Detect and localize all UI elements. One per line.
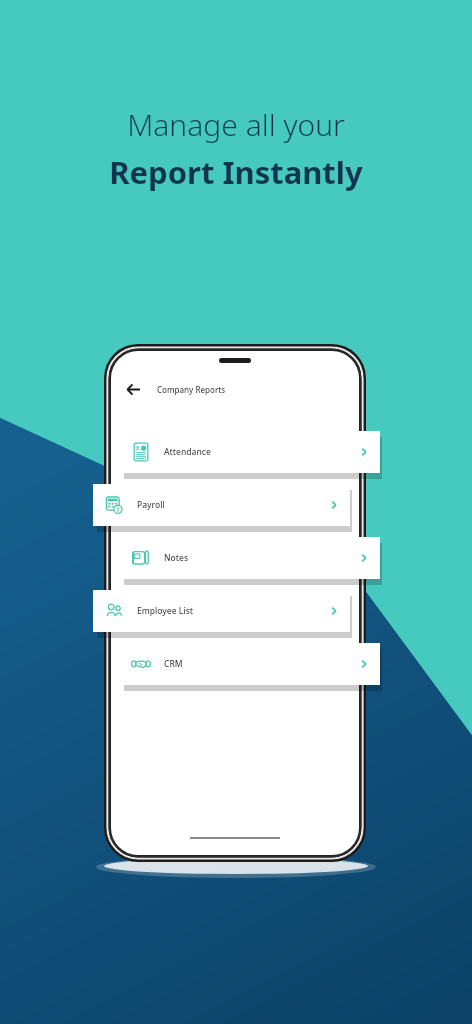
button[interactable]: Attendance <box>120 431 380 473</box>
staticText: Notes <box>164 552 189 564</box>
button[interactable]: CRM <box>120 643 380 685</box>
staticText: Payroll <box>137 499 165 511</box>
staticText: Attendance <box>164 446 211 458</box>
staticText: Company Reports <box>157 384 226 395</box>
button[interactable]: Payroll <box>93 484 350 526</box>
staticText: Manage all your <box>127 104 345 145</box>
staticText: Report Instantly <box>109 151 363 193</box>
button[interactable]: Notes <box>120 537 380 579</box>
button[interactable]: Back <box>123 379 143 399</box>
staticText: Employee List <box>137 605 194 617</box>
button[interactable]: Employee List <box>93 590 350 632</box>
staticText: CRM <box>164 658 183 670</box>
